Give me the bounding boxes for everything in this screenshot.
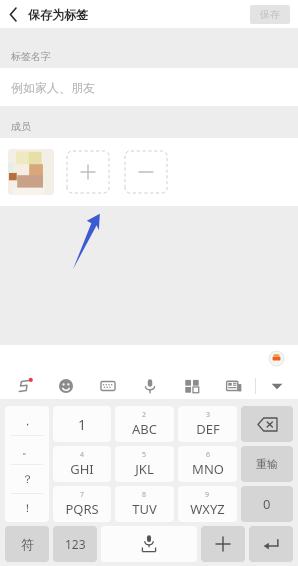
staticText: 符 xyxy=(21,536,34,552)
button[interactable]: 数字键盘 xyxy=(53,526,97,562)
staticText: 123 xyxy=(65,536,86,552)
staticText: PQRS xyxy=(65,500,99,518)
staticText: 标签名字 xyxy=(11,50,51,63)
button[interactable]: 8 xyxy=(115,486,174,522)
button[interactable]: 语音输入 xyxy=(129,372,171,399)
button[interactable]: 。 xyxy=(5,436,49,464)
staticText: 7 xyxy=(80,490,85,500)
staticText: 5 xyxy=(142,450,147,460)
button[interactable]: 4 xyxy=(53,446,111,482)
staticText: 2 xyxy=(142,410,147,420)
button[interactable]: 5 xyxy=(115,446,174,482)
staticText: ？ xyxy=(22,472,33,486)
staticText: 成员 xyxy=(11,120,31,133)
button[interactable]: 键盘布局 xyxy=(87,372,129,399)
button[interactable]: 表情 xyxy=(45,372,87,399)
staticText: JKL xyxy=(135,460,154,478)
button[interactable]: 返回 xyxy=(0,0,26,28)
button[interactable]: 2 xyxy=(115,406,174,442)
staticText: 。 xyxy=(22,443,33,457)
staticText: 4 xyxy=(80,450,85,460)
button[interactable]: 9 xyxy=(178,486,237,522)
staticText: 1 xyxy=(78,415,87,434)
button[interactable]: 保存 xyxy=(250,5,290,24)
button[interactable]: 移除成员 xyxy=(124,150,168,194)
staticText: ABC xyxy=(132,420,157,438)
staticText: ， xyxy=(22,414,33,428)
button[interactable]: ？ xyxy=(5,465,49,493)
button[interactable]: 重输 xyxy=(241,446,293,482)
button[interactable]: 0 xyxy=(241,486,293,522)
staticText: 保存 xyxy=(260,8,280,21)
staticText: MNO xyxy=(192,460,224,478)
button[interactable]: 加号 xyxy=(201,526,245,562)
button[interactable]: 更多功能 xyxy=(171,372,213,399)
staticText: 重输 xyxy=(256,457,278,471)
button[interactable]: 3 xyxy=(178,406,237,442)
staticText: 保存为标签 xyxy=(28,7,88,22)
button[interactable]: 空格 xyxy=(101,526,197,562)
staticText: 例如家人、朋友 xyxy=(11,80,95,95)
staticText: 9 xyxy=(205,490,210,500)
button[interactable]: 1 xyxy=(53,406,111,442)
button[interactable]: 收起键盘 xyxy=(256,372,298,399)
button[interactable]: ！ xyxy=(5,494,49,522)
button[interactable]: 符号 xyxy=(5,526,49,562)
staticText: 0 xyxy=(263,495,271,513)
staticText: TUV xyxy=(132,500,157,518)
button[interactable]: 7 xyxy=(53,486,111,522)
button[interactable]: ， xyxy=(5,406,49,435)
staticText: WXYZ xyxy=(190,500,225,518)
button[interactable]: 例如家人、朋友 xyxy=(0,68,298,106)
button[interactable]: 剪贴板 xyxy=(213,372,255,399)
button[interactable]: 添加成员 xyxy=(66,150,110,194)
button[interactable]: 输入法 xyxy=(4,372,45,399)
staticText: 8 xyxy=(142,490,147,500)
button[interactable]: 删除 xyxy=(241,406,293,442)
button[interactable]: 回车 xyxy=(249,526,293,562)
staticText: ！ xyxy=(22,501,33,515)
staticText: GHI xyxy=(70,460,94,478)
button[interactable]: 6 xyxy=(178,446,237,482)
staticText: 3 xyxy=(206,410,211,420)
staticText: DEF xyxy=(196,420,220,438)
staticText: 6 xyxy=(206,450,211,460)
